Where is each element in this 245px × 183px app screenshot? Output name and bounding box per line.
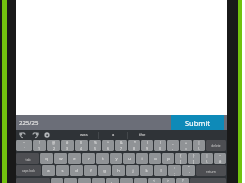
button[interactable]: g: [98, 165, 111, 176]
button[interactable]: >: [162, 178, 175, 183]
staticText: the: [139, 132, 146, 138]
button[interactable]: w: [54, 153, 67, 164]
button[interactable]: Undo: [19, 131, 27, 139]
staticText: 5: [94, 146, 97, 151]
button[interactable]: e: [68, 153, 81, 164]
button[interactable]: }: [188, 153, 200, 164]
staticText: ): [160, 140, 162, 145]
staticText: a: [47, 168, 50, 174]
staticText: 0: [159, 146, 162, 151]
button[interactable]: f: [84, 165, 97, 176]
button[interactable]: ?: [176, 178, 189, 183]
staticText: ?: [182, 178, 184, 183]
button[interactable]: the: [128, 130, 156, 140]
button[interactable]: i: [136, 153, 148, 164]
staticText: was: [80, 132, 88, 138]
staticText: o: [154, 156, 157, 162]
staticText: j: [132, 168, 134, 174]
staticText: 1: [38, 146, 41, 151]
button[interactable]: j: [126, 165, 139, 176]
staticText: {: [180, 153, 182, 158]
staticText: @: [52, 140, 56, 145]
staticText: i: [141, 156, 143, 162]
button[interactable]: $: [75, 140, 88, 151]
button[interactable]: n: [120, 178, 133, 183]
button[interactable]: !: [33, 140, 46, 151]
button[interactable]: %: [89, 140, 101, 151]
button[interactable]: l: [154, 165, 167, 176]
button[interactable]: @: [47, 140, 60, 151]
staticText: \: [206, 159, 208, 164]
button[interactable]: :: [168, 165, 181, 176]
button[interactable]: #: [61, 140, 74, 151]
staticText: *: [134, 140, 136, 145]
button[interactable]: <: [148, 178, 161, 183]
staticText: :: [174, 165, 175, 170]
button[interactable]: _: [167, 140, 179, 151]
button[interactable]: s: [56, 165, 69, 176]
staticText: ]: [193, 159, 195, 164]
button[interactable]: ~: [214, 153, 226, 164]
button[interactable]: x: [64, 178, 77, 183]
staticText: !: [39, 140, 40, 145]
staticText: 6: [107, 146, 110, 151]
button[interactable]: b: [106, 178, 119, 183]
staticText: [: [180, 159, 182, 164]
button[interactable]: ~: [16, 140, 32, 151]
button[interactable]: ^: [102, 140, 114, 151]
staticText: a: [112, 132, 115, 138]
button[interactable]: |: [201, 153, 213, 164]
staticText: k: [145, 168, 148, 174]
button[interactable]: ": [182, 165, 195, 176]
button[interactable]: o: [149, 153, 161, 164]
button[interactable]: t: [96, 153, 109, 164]
staticText: 4: [80, 146, 83, 151]
button[interactable]: ): [154, 140, 166, 151]
button[interactable]: h: [112, 165, 125, 176]
staticText: ^: [107, 140, 110, 145]
button[interactable]: r: [82, 153, 95, 164]
button[interactable]: u: [123, 153, 135, 164]
staticText: t: [102, 156, 104, 162]
staticText: 3: [66, 146, 69, 151]
button[interactable]: &: [115, 140, 127, 151]
button[interactable]: q: [40, 153, 53, 164]
button[interactable]: d: [70, 165, 83, 176]
button[interactable]: caps lock: [16, 165, 41, 176]
button[interactable]: tab: [16, 153, 39, 164]
button[interactable]: a: [99, 130, 127, 140]
staticText: ~: [23, 140, 26, 145]
button[interactable]: y: [110, 153, 122, 164]
button[interactable]: a: [42, 165, 55, 176]
staticText: `: [24, 146, 25, 151]
button[interactable]: Clipboard: [43, 131, 51, 139]
button[interactable]: {: [175, 153, 187, 164]
button[interactable]: delete: [206, 140, 226, 151]
button[interactable]: +: [180, 140, 192, 151]
staticText: 8: [133, 146, 136, 151]
button[interactable]: *: [128, 140, 140, 151]
button[interactable]: c: [78, 178, 91, 183]
button[interactable]: was: [70, 130, 98, 140]
button[interactable]: v: [92, 178, 105, 183]
staticText: #: [219, 159, 222, 164]
button[interactable]: |: [193, 140, 205, 151]
button[interactable]: return: [196, 165, 226, 176]
staticText: g: [103, 168, 106, 174]
staticText: <: [153, 178, 156, 183]
button[interactable]: z: [51, 178, 63, 183]
button[interactable]: Submit: [171, 115, 224, 130]
button[interactable]: (: [141, 140, 153, 151]
staticText: l: [160, 168, 162, 174]
staticText: ~: [219, 153, 222, 158]
staticText: -: [172, 146, 174, 151]
button[interactable]: p: [162, 153, 174, 164]
button[interactable]: k: [140, 165, 153, 176]
button[interactable]: m: [134, 178, 147, 183]
button[interactable]: Redo: [31, 131, 39, 139]
